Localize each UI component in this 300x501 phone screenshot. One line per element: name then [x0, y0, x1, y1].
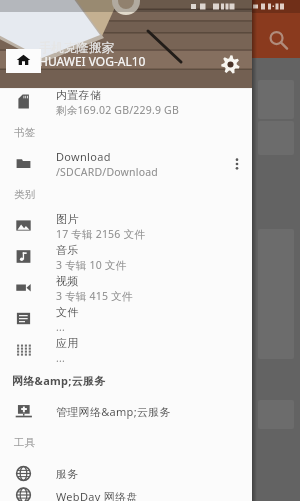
button[interactable]: 服务	[0, 458, 252, 489]
staticText: 网络&amp;云服务	[12, 373, 106, 388]
staticText: /SDCARD/Download	[56, 165, 158, 179]
staticText: 内置存储	[56, 88, 102, 102]
button[interactable]: Search	[266, 28, 290, 52]
staticText: 类别	[14, 188, 36, 201]
staticText: 书签	[14, 126, 36, 139]
staticText: 工具	[14, 436, 36, 449]
button[interactable]: WebDav 网络盘	[0, 489, 252, 501]
button[interactable]: 管理网络&amp;云服务	[0, 396, 252, 427]
button[interactable]: More options	[222, 148, 252, 179]
button[interactable]: 视频	[0, 272, 252, 303]
staticText: 图片	[56, 212, 79, 226]
button[interactable]: 内置存储	[0, 86, 252, 117]
button[interactable]: Download	[0, 148, 252, 179]
staticText: 视频	[56, 274, 79, 288]
staticText: 3 专辑 415 文件	[56, 289, 133, 303]
staticText: 文件	[56, 305, 79, 319]
staticText: 服务	[56, 467, 79, 481]
button[interactable]: 图片	[0, 210, 252, 241]
staticText: 剩余169.02 GB/229.9 GB	[56, 103, 179, 117]
staticText: Download	[56, 149, 111, 164]
staticText: 17 专辑 2156 文件	[56, 227, 145, 241]
button[interactable]: Home	[16, 52, 31, 67]
button[interactable]: Settings	[221, 55, 240, 74]
staticText: 音乐	[56, 243, 79, 257]
staticText: 3 专辑 10 文件	[56, 258, 127, 272]
staticText: 手机克隆搬家	[39, 40, 114, 56]
staticText: 应用	[56, 336, 79, 350]
button[interactable]: 应用	[0, 334, 252, 365]
button[interactable]: 音乐	[0, 241, 252, 272]
staticText: HUAWEI VOG-AL10	[39, 53, 146, 69]
button[interactable]: 文件	[0, 303, 252, 334]
staticText: ...	[56, 320, 66, 334]
staticText: ...	[56, 351, 66, 365]
staticText: 管理网络&amp;云服务	[56, 404, 171, 419]
staticText: WebDav 网络盘	[56, 489, 138, 501]
